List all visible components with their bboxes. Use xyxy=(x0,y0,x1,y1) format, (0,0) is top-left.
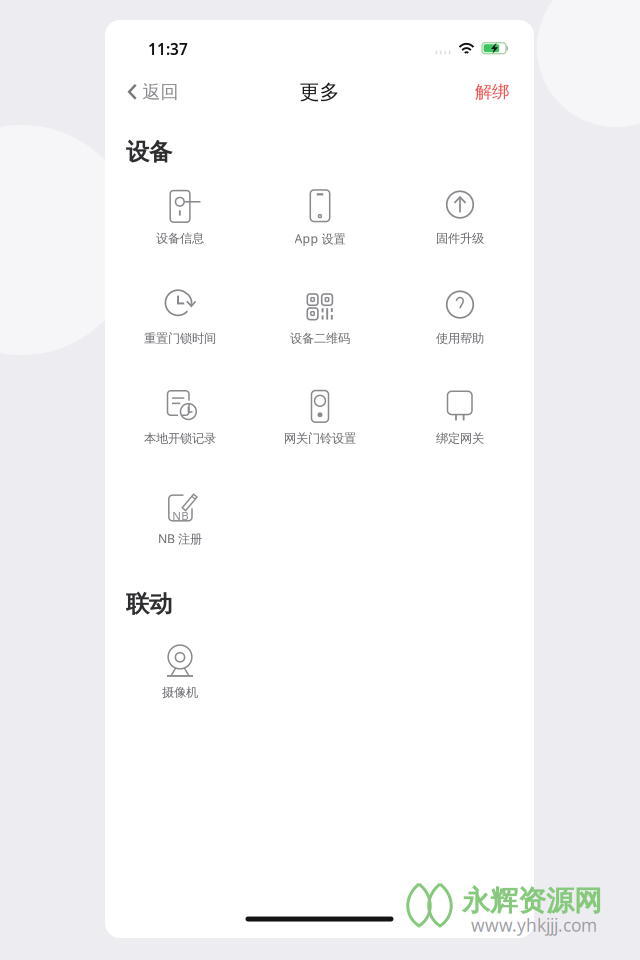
staticText: 固件升级 xyxy=(436,231,484,246)
button[interactable]: 设备信息 xyxy=(110,184,250,252)
staticText: 11:37 xyxy=(148,39,188,59)
staticText: NB xyxy=(172,508,188,523)
button[interactable]: 设备二维码 xyxy=(250,284,390,352)
staticText: www.yhkjjj.com xyxy=(471,913,597,937)
staticText: 设备信息 xyxy=(156,231,204,246)
staticText: 永辉资源网 xyxy=(462,883,602,919)
button[interactable]: 本地开锁记录 xyxy=(110,384,250,452)
button[interactable]: NB xyxy=(110,484,250,552)
staticText: 解绑 xyxy=(475,81,509,103)
staticText: 绑定网关 xyxy=(436,431,484,446)
button[interactable]: 网关门铃设置 xyxy=(250,384,390,452)
staticText: 重置门锁时间 xyxy=(144,331,216,346)
button[interactable]: 固件升级 xyxy=(390,184,530,252)
staticText: 联动 xyxy=(126,589,172,619)
button[interactable]: 解绑 xyxy=(459,70,525,114)
staticText: 设备二维码 xyxy=(290,331,350,346)
staticText: 更多 xyxy=(299,79,339,105)
button[interactable]: 使用帮助 xyxy=(390,284,530,352)
staticText: 本地开锁记录 xyxy=(144,431,216,446)
staticText: 返回 xyxy=(142,81,178,103)
staticText: App 设置 xyxy=(294,230,345,247)
staticText: 设备 xyxy=(126,137,172,167)
staticText: 网关门铃设置 xyxy=(284,431,356,446)
button[interactable]: 重置门锁时间 xyxy=(110,284,250,352)
button[interactable]: 绑定网关 xyxy=(390,384,530,452)
staticText: NB 注册 xyxy=(158,530,202,547)
button[interactable]: 摄像机 xyxy=(110,638,250,706)
staticText: 使用帮助 xyxy=(436,331,484,346)
staticText: 摄像机 xyxy=(162,685,198,700)
button[interactable]: App 设置 xyxy=(250,184,390,252)
button[interactable]: 返回 xyxy=(113,70,192,114)
